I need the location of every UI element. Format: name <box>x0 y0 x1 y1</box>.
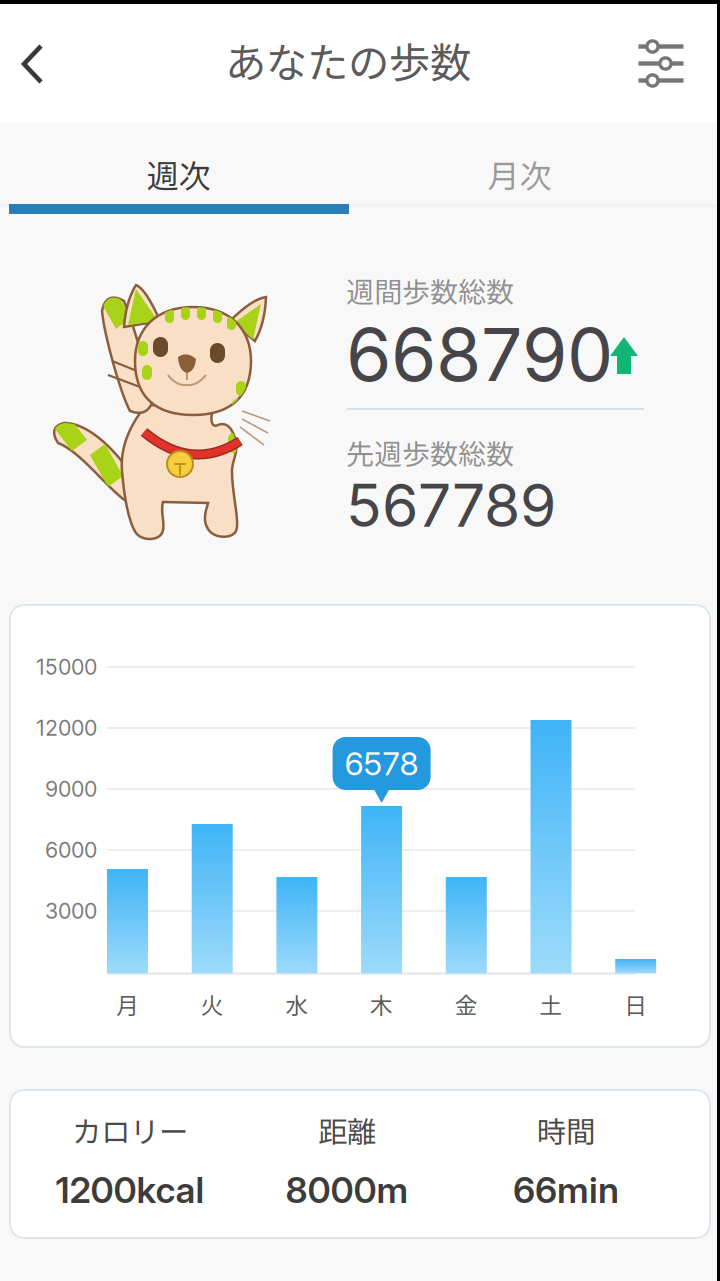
staticText: 月 <box>116 988 139 1020</box>
staticText: 距離 <box>318 1109 376 1151</box>
staticText: 668790 <box>346 310 613 399</box>
staticText: 15000 <box>36 654 97 680</box>
button[interactable]: 月次 <box>357 122 720 214</box>
staticText: 66min <box>513 1168 619 1212</box>
staticText: 3000 <box>45 898 97 924</box>
staticText: 時間 <box>537 1109 595 1151</box>
staticText: 週次 <box>146 151 210 197</box>
staticText: 金 <box>455 988 478 1020</box>
staticText: 先週歩数総数 <box>346 432 514 472</box>
staticText: あなたの歩数 <box>225 30 471 90</box>
staticText: 土 <box>539 988 562 1020</box>
staticText: 6000 <box>45 837 97 863</box>
button[interactable]: Filter settings <box>638 0 720 122</box>
staticText: 火 <box>201 988 224 1020</box>
staticText: 12000 <box>36 715 97 741</box>
staticText: 月次 <box>487 151 551 197</box>
staticText: 6578 <box>345 744 419 783</box>
button[interactable]: 週次 <box>0 122 357 214</box>
staticText: 1200kcal <box>55 1168 204 1212</box>
staticText: 日 <box>624 988 647 1020</box>
staticText: 8000m <box>285 1168 408 1212</box>
staticText: 週間歩数総数 <box>346 270 514 310</box>
staticText: 木 <box>370 988 393 1020</box>
staticText: カロリー <box>72 1109 188 1151</box>
staticText: 567789 <box>346 470 556 541</box>
staticText: 水 <box>285 988 308 1020</box>
staticText: 9000 <box>45 776 97 802</box>
button[interactable]: Back <box>0 0 66 122</box>
